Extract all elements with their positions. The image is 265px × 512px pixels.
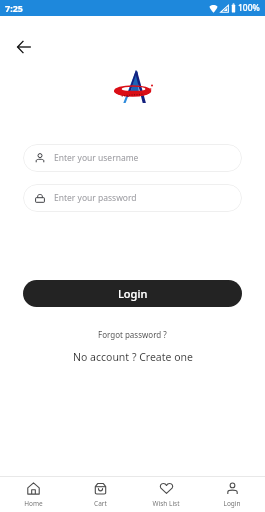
staticText: Forgot password ? [98, 329, 167, 340]
button[interactable]: Login [199, 482, 265, 508]
staticText: Cart [94, 499, 107, 508]
button[interactable]: No account ? Create one [65, 348, 201, 366]
staticText: Enter your username [54, 152, 139, 164]
button[interactable]: Enter your password [23, 184, 242, 212]
staticText: Login [223, 499, 241, 508]
staticText: 7:25 [5, 2, 23, 14]
button[interactable]: Wish List [133, 482, 199, 508]
staticText: Wish List [152, 499, 180, 508]
staticText: Enter your password [54, 192, 137, 204]
staticText: 100% [238, 2, 260, 14]
staticText: Login [118, 286, 148, 301]
button[interactable]: Home [0, 482, 67, 508]
button[interactable]: Cart [67, 482, 133, 508]
button[interactable]: Forgot password ? [90, 327, 175, 342]
button[interactable]: Enter your username [23, 144, 242, 172]
staticText: Home [24, 499, 43, 508]
button[interactable]: Back [11, 34, 36, 59]
staticText: No account ? Create one [73, 350, 193, 364]
button[interactable]: Login [23, 280, 242, 307]
